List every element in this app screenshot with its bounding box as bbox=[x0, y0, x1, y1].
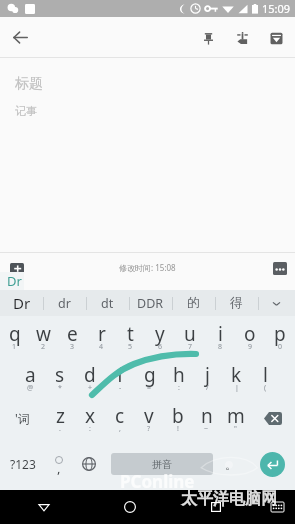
staticText: " bbox=[234, 424, 237, 434]
button[interactable]: Backspace bbox=[250, 397, 295, 438]
button[interactable]: y bbox=[145, 316, 175, 356]
button[interactable]: Switch language bbox=[72, 438, 106, 490]
button[interactable]: Home bbox=[87, 490, 173, 524]
staticText: 得 bbox=[230, 295, 243, 311]
button[interactable]: Dr bbox=[0, 290, 43, 316]
staticText: dt bbox=[101, 295, 114, 312]
button[interactable]: p bbox=[265, 316, 295, 356]
button[interactable]: z bbox=[45, 397, 75, 438]
staticText: 5 bbox=[128, 342, 133, 352]
staticText: 1 bbox=[12, 342, 17, 352]
button[interactable]: Pin bbox=[191, 21, 225, 55]
button[interactable]: m bbox=[221, 397, 250, 438]
button[interactable]: More options bbox=[265, 254, 295, 282]
staticText: g bbox=[144, 362, 156, 388]
staticText: r bbox=[98, 321, 106, 347]
button[interactable]: , bbox=[46, 438, 72, 490]
button[interactable]: f bbox=[105, 356, 135, 397]
button[interactable]: DDR bbox=[129, 290, 172, 316]
staticText: u bbox=[184, 321, 196, 347]
staticText: - bbox=[119, 383, 122, 393]
button[interactable]: j bbox=[193, 356, 222, 397]
staticText: 15:09 bbox=[262, 1, 291, 16]
staticText: 修改时间: 15:08 bbox=[119, 262, 176, 273]
staticText: a bbox=[25, 362, 36, 388]
staticText: i bbox=[218, 321, 223, 347]
button[interactable]: Enter bbox=[249, 438, 295, 490]
button[interactable]: Hide keyboard bbox=[259, 490, 295, 524]
button[interactable]: r bbox=[87, 316, 116, 356]
button[interactable]: t bbox=[116, 316, 145, 356]
staticText: l bbox=[263, 362, 268, 388]
staticText: k bbox=[231, 362, 242, 388]
staticText: s bbox=[55, 362, 65, 388]
button[interactable]: More suggestions bbox=[258, 290, 295, 316]
staticText: ! bbox=[177, 424, 179, 434]
button[interactable]: Back bbox=[0, 490, 87, 524]
staticText: ~ bbox=[204, 424, 209, 434]
staticText: dr bbox=[58, 295, 71, 312]
staticText: 标题 bbox=[15, 75, 43, 93]
button[interactable]: ?123 bbox=[0, 438, 46, 490]
staticText: '词 bbox=[15, 410, 30, 426]
button[interactable]: dt bbox=[86, 290, 129, 316]
staticText: * bbox=[58, 383, 62, 393]
button[interactable]: w bbox=[29, 316, 58, 356]
staticText: 4 bbox=[99, 342, 104, 352]
button[interactable]: s bbox=[45, 356, 75, 397]
staticText: 拼音 bbox=[152, 458, 172, 471]
staticText: . bbox=[59, 424, 61, 434]
button[interactable]: b bbox=[163, 397, 192, 438]
staticText: v bbox=[144, 403, 154, 429]
staticText: ?123 bbox=[10, 456, 36, 472]
button[interactable]: d bbox=[75, 356, 105, 397]
staticText: + bbox=[88, 383, 93, 393]
button[interactable]: a bbox=[15, 356, 45, 397]
staticText: q bbox=[9, 321, 21, 347]
staticText: 0 bbox=[278, 342, 283, 352]
staticText: o bbox=[244, 321, 256, 347]
button[interactable]: 得 bbox=[215, 290, 258, 316]
staticText: | bbox=[235, 383, 239, 393]
button[interactable]: o bbox=[235, 316, 265, 356]
staticText: , bbox=[119, 424, 121, 434]
button[interactable]: Recent apps bbox=[173, 490, 259, 524]
staticText: / bbox=[206, 383, 209, 393]
button[interactable]: Archive bbox=[259, 21, 293, 55]
staticText: z bbox=[56, 403, 65, 429]
button[interactable]: k bbox=[222, 356, 251, 397]
button[interactable]: n bbox=[192, 397, 221, 438]
staticText: b bbox=[172, 403, 184, 429]
staticText: 太平洋电脑网 bbox=[181, 489, 277, 509]
staticText: 2 bbox=[41, 342, 46, 352]
button[interactable]: 。 bbox=[213, 438, 249, 490]
button[interactable]: '词 bbox=[0, 397, 45, 438]
staticText: w bbox=[36, 321, 51, 347]
staticText: m bbox=[227, 403, 245, 429]
staticText: 3 bbox=[70, 342, 75, 352]
button[interactable]: Add image bbox=[0, 254, 34, 282]
button[interactable]: v bbox=[134, 397, 163, 438]
staticText: DDR bbox=[137, 295, 164, 312]
button[interactable]: x bbox=[75, 397, 105, 438]
button[interactable]: q bbox=[0, 316, 29, 356]
button[interactable]: g bbox=[135, 356, 164, 397]
staticText: e bbox=[67, 321, 78, 347]
button[interactable]: Handwriting input bbox=[225, 21, 259, 55]
button[interactable]: h bbox=[164, 356, 193, 397]
staticText: 8 bbox=[218, 342, 223, 352]
staticText: y bbox=[155, 321, 165, 347]
button[interactable]: Back bbox=[0, 17, 41, 58]
staticText: , bbox=[57, 459, 61, 477]
button[interactable]: i bbox=[205, 316, 235, 356]
button[interactable]: 的 bbox=[172, 290, 215, 316]
button[interactable]: u bbox=[175, 316, 205, 356]
button[interactable]: c bbox=[105, 397, 134, 438]
button[interactable]: l bbox=[251, 356, 280, 397]
button[interactable]: 拼音 bbox=[111, 453, 213, 475]
button[interactable]: e bbox=[58, 316, 87, 356]
staticText: Dr bbox=[13, 293, 31, 313]
staticText: h bbox=[173, 362, 185, 388]
button[interactable]: dr bbox=[43, 290, 86, 316]
staticText: @ bbox=[27, 383, 34, 393]
